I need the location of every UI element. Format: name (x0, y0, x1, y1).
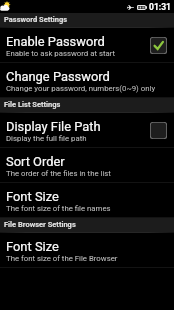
staticText: Font Size (6, 189, 59, 204)
staticText: Display File Path (6, 119, 101, 134)
other: Weather notification (0, 2, 10, 11)
staticText: The font size of the File Browser (6, 254, 118, 263)
staticText: Font Size (6, 239, 59, 254)
button[interactable]: Font Size (0, 183, 174, 218)
staticText: Enable to ask password at start (6, 49, 116, 58)
staticText: File List Settings (4, 100, 61, 109)
button[interactable]: Display File Path (0, 113, 174, 148)
other: Unchecked (150, 122, 167, 139)
button[interactable]: Font Size (0, 233, 174, 268)
staticText: Change Password (6, 69, 110, 84)
staticText: The order of the files in the list (6, 169, 111, 178)
staticText: 01:31 (149, 2, 171, 12)
staticText: Password Settings (4, 15, 68, 24)
other: Checked (150, 37, 167, 54)
button[interactable]: Enable Password (0, 28, 174, 63)
staticText: Change your password, numbers(0~9) only (6, 84, 156, 93)
staticText: File Browser Settings (4, 220, 76, 229)
staticText: The font size of the file names (6, 204, 111, 213)
button[interactable]: Sort Order (0, 148, 174, 183)
staticText: Display the full file path (6, 134, 87, 143)
button[interactable]: Change Password (0, 63, 174, 98)
staticText: Sort Order (6, 154, 65, 169)
staticText: Enable Password (6, 34, 105, 49)
